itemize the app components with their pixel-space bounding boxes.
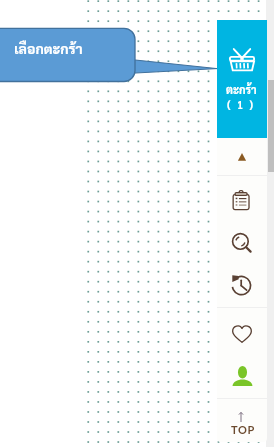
button[interactable]: Search — [217, 221, 267, 264]
staticText: ( 1 ) — [227, 97, 255, 111]
button[interactable]: Ranking — [217, 138, 267, 175]
staticText: TOP — [231, 423, 255, 436]
button[interactable]: Account — [217, 354, 267, 398]
button[interactable]: ตะกร้า — [217, 20, 267, 138]
button[interactable]: Order list — [217, 176, 267, 221]
staticText: เลือกตะกร้า — [14, 39, 83, 57]
button[interactable]: History — [217, 264, 267, 307]
staticText: ตะกร้า — [226, 82, 257, 96]
button[interactable]: Favourites — [217, 308, 267, 354]
button[interactable]: Scroll to top — [217, 399, 267, 441]
